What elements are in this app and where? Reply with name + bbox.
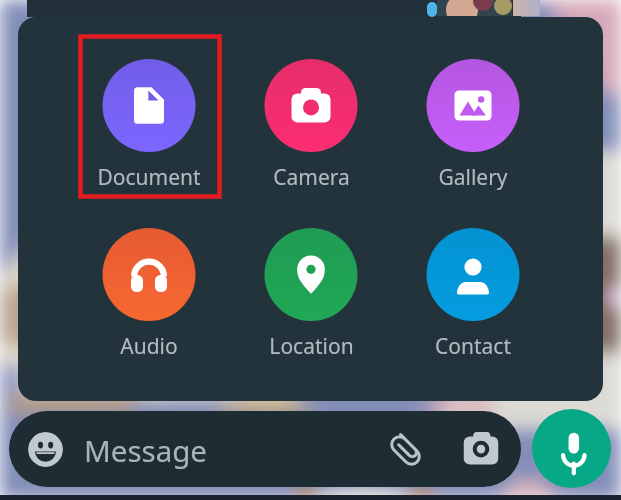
staticText: Gallery: [438, 163, 508, 192]
button[interactable]: Attach file: [387, 432, 424, 469]
button[interactable]: Contact: [403, 222, 543, 347]
button[interactable]: Camera: [241, 53, 381, 178]
button[interactable]: Document: [79, 53, 219, 178]
staticText: Location: [269, 332, 354, 361]
button[interactable]: Gallery: [403, 53, 543, 178]
button[interactable]: Emoji: [28, 432, 63, 467]
staticText: Message: [84, 430, 207, 470]
button[interactable]: Audio: [79, 222, 219, 347]
staticText: Contact: [435, 332, 511, 361]
staticText: Audio: [120, 332, 178, 361]
staticText: Camera: [273, 163, 350, 192]
button[interactable]: Record voice message: [532, 409, 611, 488]
staticText: Document: [97, 163, 201, 192]
button[interactable]: Camera: [461, 428, 501, 468]
button[interactable]: Location: [241, 222, 381, 347]
